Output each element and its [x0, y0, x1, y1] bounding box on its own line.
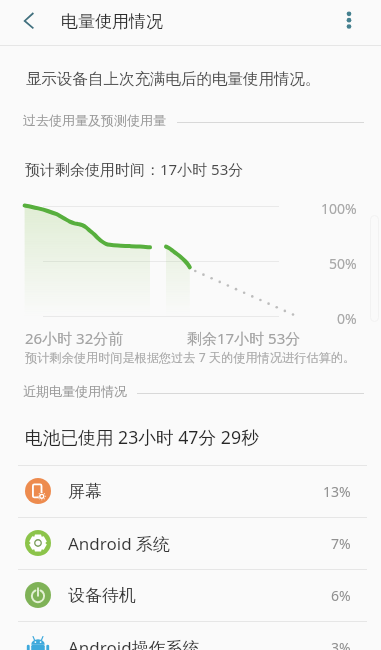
staticText: 显示设备自上次充满电后的电量使用情况。 — [26, 69, 321, 89]
button[interactable]: Back — [8, 2, 50, 44]
staticText: 电池已使用 23小时 47分 29秒 — [25, 425, 259, 449]
button[interactable]: More options — [328, 0, 370, 42]
staticText: 13% — [323, 482, 351, 501]
button[interactable]: Android 系统 — [0, 517, 381, 569]
staticText: 3% — [331, 638, 351, 650]
staticText: 6% — [331, 586, 351, 605]
staticText: 剩余17小时 53分 — [187, 328, 301, 348]
staticText: 设备待机 — [68, 585, 136, 606]
staticText: 100% — [321, 199, 357, 218]
button[interactable]: Android操作系统 — [0, 621, 381, 650]
staticText: 0% — [337, 309, 357, 328]
staticText: 近期电量使用情况 — [23, 383, 127, 399]
staticText: 预计剩余使用时间是根据您过去 7 天的使用情况进行估算的。 — [25, 349, 356, 366]
staticText: 26小时 32分前 — [25, 328, 124, 348]
staticText: 过去使用量及预测使用量 — [23, 112, 166, 128]
staticText: 50% — [329, 254, 357, 273]
staticText: 预计剩余使用时间：17小时 53分 — [25, 159, 244, 179]
staticText: 屏幕 — [68, 481, 102, 502]
staticText: 7% — [331, 534, 351, 553]
staticText: 电量使用情况 — [61, 11, 163, 32]
staticText: Android 系统 — [68, 532, 171, 555]
staticText: Android操作系统 — [68, 636, 200, 650]
button[interactable]: 设备待机 — [0, 569, 381, 621]
button[interactable]: 屏幕 — [0, 465, 381, 517]
